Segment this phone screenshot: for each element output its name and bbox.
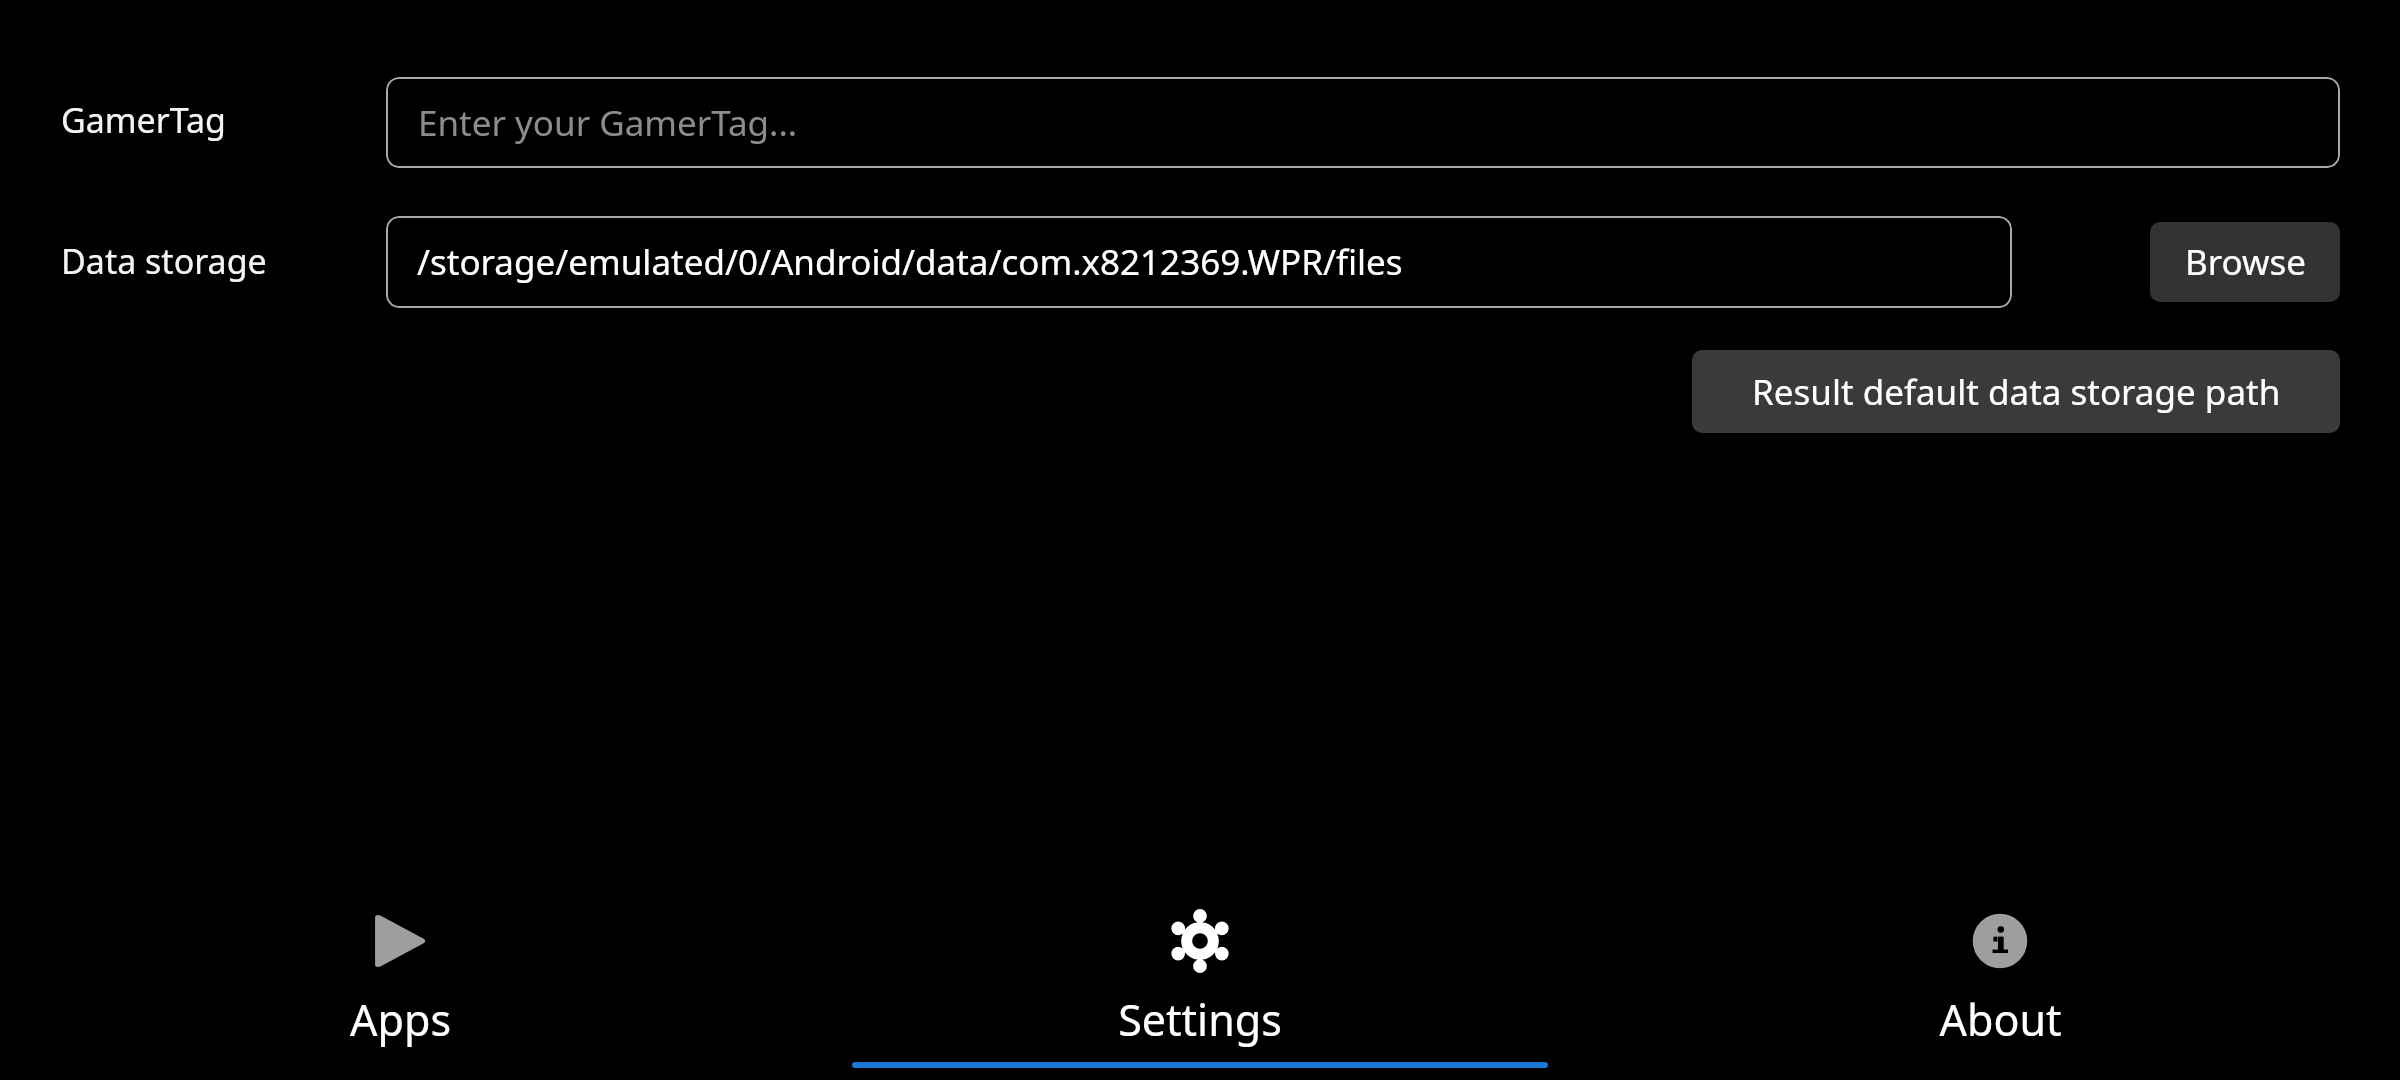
- staticText: About: [1939, 990, 2062, 1049]
- button[interactable]: Settings: [800, 890, 1600, 1080]
- button[interactable]: About: [1600, 890, 2400, 1080]
- staticText: Browse: [2185, 238, 2306, 286]
- staticText: Apps: [350, 990, 451, 1049]
- button[interactable]: Enter your GamerTag...: [386, 77, 2340, 168]
- staticText: Settings: [1118, 990, 1282, 1049]
- staticText: Enter your GamerTag...: [418, 99, 798, 147]
- staticText: /storage/emulated/0/Android/data/com.x82…: [417, 238, 1403, 286]
- staticText: Data storage: [61, 238, 267, 284]
- staticText: GamerTag: [61, 97, 227, 143]
- staticText: Result default data storage path: [1752, 368, 2281, 416]
- button[interactable]: Apps: [0, 890, 800, 1080]
- button[interactable]: Result default data storage path: [1692, 350, 2340, 433]
- button[interactable]: Browse: [2150, 222, 2340, 302]
- button[interactable]: /storage/emulated/0/Android/data/com.x82…: [386, 216, 2012, 308]
